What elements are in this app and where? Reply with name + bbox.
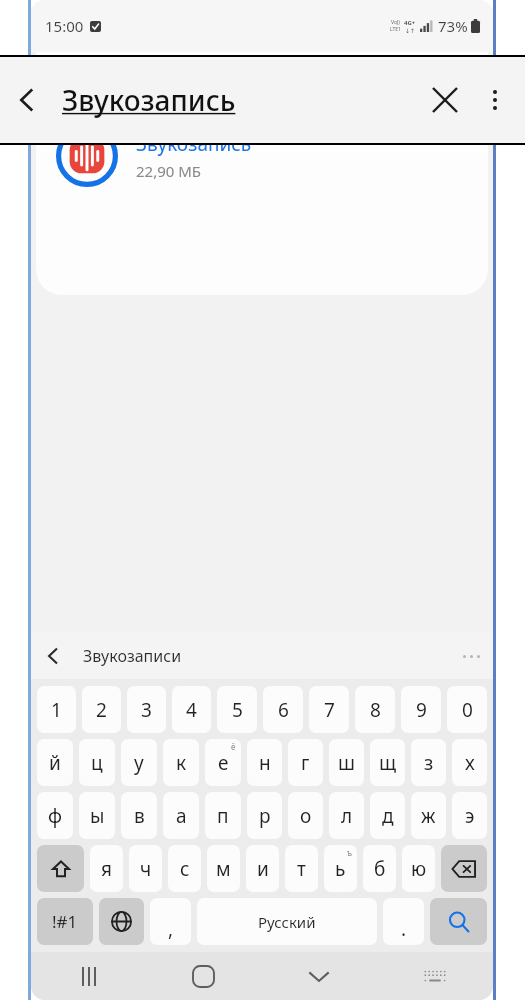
button[interactable]: 1 bbox=[37, 686, 76, 733]
button[interactable]: у bbox=[121, 739, 157, 786]
button[interactable]: б bbox=[363, 845, 396, 892]
staticText: 73% bbox=[438, 16, 468, 36]
staticText: ы bbox=[90, 803, 105, 829]
button[interactable]: Clear bbox=[421, 76, 469, 124]
button[interactable]: к bbox=[163, 739, 199, 786]
staticText: 22,90 МБ bbox=[136, 161, 202, 181]
button[interactable]: ж bbox=[411, 792, 446, 839]
button[interactable]: Hide keyboard bbox=[261, 952, 377, 1000]
staticText: н bbox=[259, 750, 271, 776]
button[interactable]: Recents bbox=[31, 952, 146, 1000]
button[interactable]: ф bbox=[37, 792, 73, 839]
button[interactable]: е bbox=[205, 739, 241, 786]
button[interactable]: п bbox=[205, 792, 241, 839]
button[interactable]: ч bbox=[129, 845, 162, 892]
button[interactable]: Sort bbox=[436, 67, 466, 97]
button[interactable]: Звукозаписи bbox=[83, 645, 182, 667]
button[interactable]: Search bbox=[430, 898, 487, 945]
staticText: э bbox=[465, 803, 475, 829]
staticText: 9 bbox=[416, 697, 427, 723]
button[interactable]: Звукозапись bbox=[36, 112, 488, 200]
button[interactable]: с bbox=[168, 845, 201, 892]
button[interactable]: 5 bbox=[217, 686, 257, 733]
staticText: . bbox=[401, 916, 407, 942]
staticText: 15:00 bbox=[45, 16, 84, 36]
staticText: 6 bbox=[278, 697, 289, 723]
button[interactable]: Звукозапись bbox=[62, 81, 236, 119]
staticText: ё bbox=[231, 741, 236, 752]
button[interactable]: н bbox=[247, 739, 282, 786]
staticText: LTE1 bbox=[390, 26, 401, 33]
staticText: й bbox=[49, 750, 61, 776]
button[interactable]: ь bbox=[324, 845, 357, 892]
button[interactable]: м bbox=[207, 845, 240, 892]
button[interactable]: , bbox=[150, 898, 191, 945]
button[interactable]: . bbox=[383, 898, 424, 945]
staticText: ж bbox=[421, 803, 436, 829]
button[interactable]: 3 bbox=[127, 686, 166, 733]
button[interactable]: Русский bbox=[197, 898, 377, 945]
button[interactable]: л bbox=[329, 792, 364, 839]
button[interactable]: а bbox=[163, 792, 199, 839]
staticText: в bbox=[134, 803, 145, 829]
button[interactable]: в bbox=[121, 792, 157, 839]
button[interactable]: 9 bbox=[401, 686, 441, 733]
button[interactable]: 4 bbox=[172, 686, 211, 733]
staticText: 4G+ bbox=[404, 19, 416, 27]
staticText: 0 bbox=[462, 697, 473, 723]
button[interactable]: 2 bbox=[82, 686, 121, 733]
button[interactable]: и bbox=[246, 845, 279, 892]
button[interactable]: р bbox=[247, 792, 282, 839]
button[interactable]: Backspace bbox=[441, 845, 487, 892]
button[interactable]: ы bbox=[79, 792, 115, 839]
button[interactable]: Back bbox=[31, 634, 75, 678]
staticText: 1 bbox=[51, 697, 62, 723]
staticText: VoJ) bbox=[391, 19, 400, 26]
button[interactable]: я bbox=[90, 845, 123, 892]
staticText: ф bbox=[48, 803, 63, 829]
staticText: 8 bbox=[370, 697, 381, 723]
staticText: Звукозапись bbox=[136, 131, 252, 157]
staticText: ш bbox=[338, 750, 355, 776]
button[interactable]: More options bbox=[475, 80, 515, 120]
button[interactable]: Shift bbox=[37, 845, 84, 892]
staticText: б bbox=[374, 856, 386, 882]
button[interactable]: д bbox=[370, 792, 405, 839]
button[interactable]: г bbox=[288, 739, 323, 786]
staticText: ↓↑ bbox=[405, 27, 416, 34]
staticText: и bbox=[257, 856, 269, 882]
button[interactable]: 7 bbox=[309, 686, 349, 733]
staticText: к bbox=[176, 750, 187, 776]
button[interactable]: Home bbox=[146, 952, 261, 1000]
button[interactable]: щ bbox=[370, 739, 405, 786]
staticText: о bbox=[300, 803, 312, 829]
staticText: ю bbox=[411, 856, 427, 882]
button[interactable]: з bbox=[411, 739, 446, 786]
staticText: ь bbox=[335, 856, 346, 882]
staticText: Русский bbox=[258, 912, 316, 932]
button[interactable]: ц bbox=[79, 739, 115, 786]
button[interactable]: !#1 bbox=[37, 898, 93, 945]
button[interactable]: Change language bbox=[99, 898, 144, 945]
staticText: у bbox=[134, 750, 144, 776]
button[interactable]: More options bbox=[449, 634, 493, 678]
button[interactable]: 6 bbox=[263, 686, 303, 733]
button[interactable]: ю bbox=[402, 845, 435, 892]
button[interactable]: о bbox=[288, 792, 323, 839]
button[interactable]: Back bbox=[0, 73, 54, 127]
button[interactable]: 8 bbox=[355, 686, 395, 733]
button[interactable]: Keyboard settings bbox=[377, 952, 493, 1000]
staticText: Ваши приложения bbox=[58, 72, 195, 92]
staticText: 3 bbox=[141, 697, 152, 723]
button[interactable]: ш bbox=[329, 739, 364, 786]
button[interactable]: т bbox=[285, 845, 318, 892]
button[interactable]: 0 bbox=[447, 686, 487, 733]
staticText: с bbox=[180, 856, 190, 882]
button[interactable]: х bbox=[452, 739, 487, 786]
button[interactable]: й bbox=[37, 739, 73, 786]
staticText: 5 bbox=[232, 697, 243, 723]
staticText: з bbox=[424, 750, 434, 776]
staticText: м bbox=[216, 856, 231, 882]
staticText: г bbox=[301, 750, 310, 776]
button[interactable]: э bbox=[452, 792, 487, 839]
